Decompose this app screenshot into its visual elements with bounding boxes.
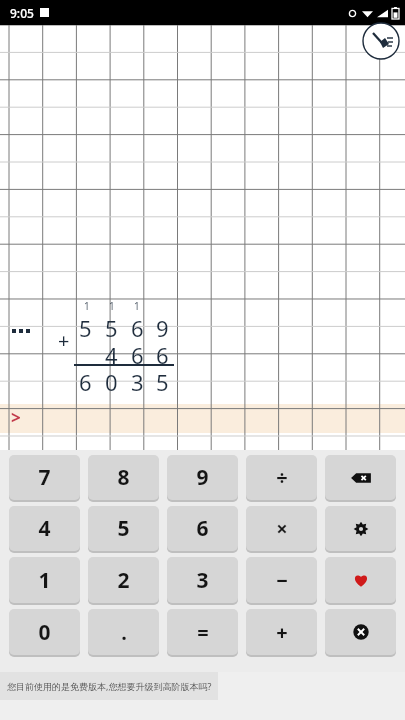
staticText: 9:05 bbox=[10, 5, 34, 21]
button[interactable]: ÷ bbox=[246, 455, 317, 500]
staticText: > bbox=[11, 406, 21, 429]
staticText: 5 bbox=[156, 367, 169, 397]
staticText: 0 bbox=[105, 367, 118, 397]
staticText: 3 bbox=[196, 566, 209, 595]
staticText: . bbox=[121, 619, 127, 646]
staticText: 3 bbox=[131, 367, 144, 397]
button[interactable]: . bbox=[88, 609, 159, 655]
staticText: 6 bbox=[156, 340, 169, 370]
staticText: 0 bbox=[38, 618, 51, 647]
button[interactable]: 6 bbox=[167, 506, 238, 551]
button[interactable]: Close bbox=[325, 609, 396, 655]
button[interactable]: + bbox=[246, 609, 317, 655]
staticText: 4 bbox=[105, 340, 118, 370]
staticText: 6 bbox=[196, 514, 209, 543]
button[interactable]: 您目前使用的是免费版本,您想要升级到高阶版本吗? bbox=[0, 672, 218, 700]
staticText: 6 bbox=[131, 313, 144, 343]
button[interactable]: 0 bbox=[9, 609, 80, 655]
staticText: 4 bbox=[38, 514, 51, 543]
button[interactable]: Backspace bbox=[325, 455, 396, 500]
staticText: 9 bbox=[156, 313, 169, 343]
staticText: 1 bbox=[84, 299, 90, 313]
button[interactable]: = bbox=[167, 609, 238, 655]
staticText: 5 bbox=[117, 514, 130, 543]
staticText: ÷ bbox=[276, 464, 288, 491]
staticText: 5 bbox=[105, 313, 118, 343]
staticText: 1 bbox=[134, 299, 140, 313]
staticText: 8 bbox=[117, 463, 130, 492]
button[interactable]: 8 bbox=[88, 455, 159, 500]
button[interactable]: 9 bbox=[167, 455, 238, 500]
staticText: 7 bbox=[38, 463, 51, 492]
staticText: − bbox=[276, 567, 288, 594]
button[interactable]: 4 bbox=[9, 506, 80, 551]
staticText: 2 bbox=[117, 566, 130, 595]
staticText: 1 bbox=[38, 566, 51, 595]
staticText: 6 bbox=[79, 367, 92, 397]
button[interactable]: Favorites bbox=[325, 557, 396, 603]
staticText: 您目前使用的是免费版本,您想要升级到高阶版本吗? bbox=[7, 680, 212, 692]
button[interactable]: 7 bbox=[9, 455, 80, 500]
staticText: 6 bbox=[131, 340, 144, 370]
button[interactable]: × bbox=[246, 506, 317, 551]
button[interactable]: 3 bbox=[167, 557, 238, 603]
button[interactable]: 1 bbox=[9, 557, 80, 603]
button[interactable]: 5 bbox=[88, 506, 159, 551]
staticText: × bbox=[276, 515, 288, 542]
staticText: 5 bbox=[79, 313, 92, 343]
staticText: + bbox=[276, 619, 288, 646]
staticText: = bbox=[197, 619, 209, 646]
button[interactable]: More options bbox=[12, 322, 36, 340]
staticText: 1 bbox=[109, 299, 115, 313]
button[interactable]: Clear worksheet bbox=[362, 22, 400, 60]
staticText: + bbox=[58, 327, 70, 354]
staticText: 9 bbox=[196, 463, 209, 492]
button[interactable]: − bbox=[246, 557, 317, 603]
button[interactable]: Settings bbox=[325, 506, 396, 551]
button[interactable]: 2 bbox=[88, 557, 159, 603]
